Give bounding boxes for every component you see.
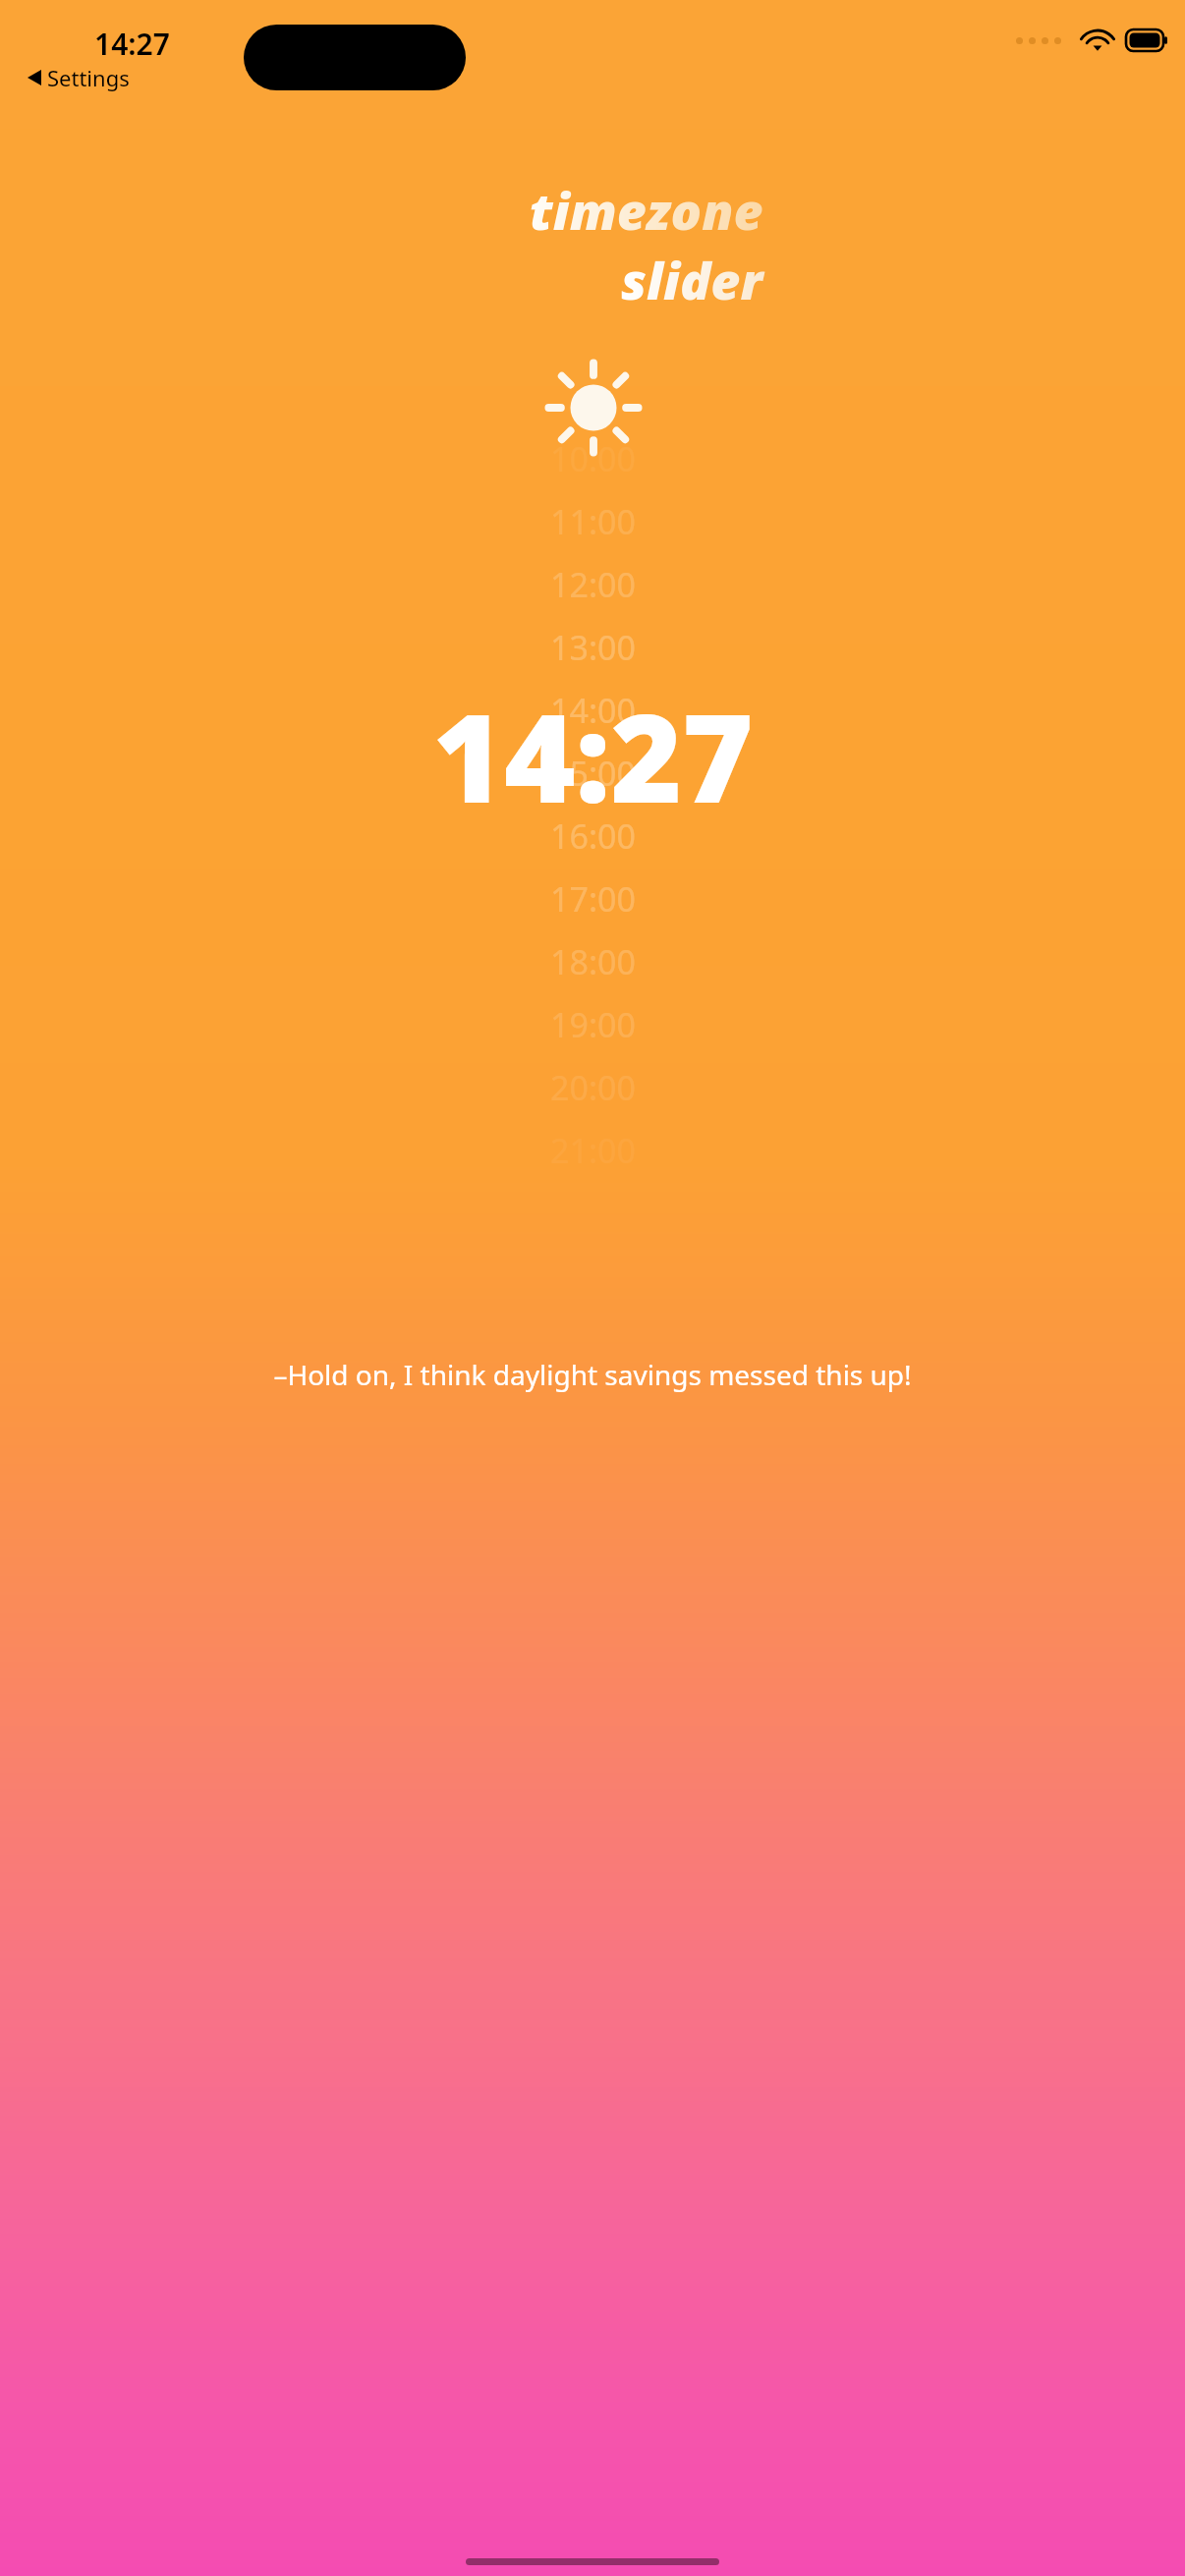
staticText: –Hold on, I think daylight savings messe…	[273, 1356, 912, 1393]
other: Daytime	[546, 361, 641, 455]
staticText: 10:00	[550, 436, 636, 481]
staticText: 20:00	[550, 1065, 636, 1110]
button[interactable]: Settings	[24, 61, 134, 94]
staticText: 14:00	[550, 688, 636, 733]
staticText: 13:00	[550, 625, 636, 670]
staticText: 17:00	[550, 876, 636, 922]
button[interactable]: 14:27	[432, 672, 754, 838]
staticText: 21:00	[550, 1128, 636, 1173]
staticText: 15:00	[550, 751, 636, 796]
staticText: slider	[621, 245, 763, 314]
staticText: timezone	[530, 175, 763, 245]
staticText: 14:27	[94, 24, 170, 64]
staticText: 19:00	[550, 1002, 636, 1047]
staticText: 18:00	[550, 939, 636, 984]
staticText: 12:00	[550, 562, 636, 607]
staticText: Settings	[47, 63, 130, 92]
staticText: 11:00	[550, 499, 636, 544]
staticText: 16:00	[550, 813, 636, 859]
button[interactable]: timezone	[530, 175, 763, 314]
